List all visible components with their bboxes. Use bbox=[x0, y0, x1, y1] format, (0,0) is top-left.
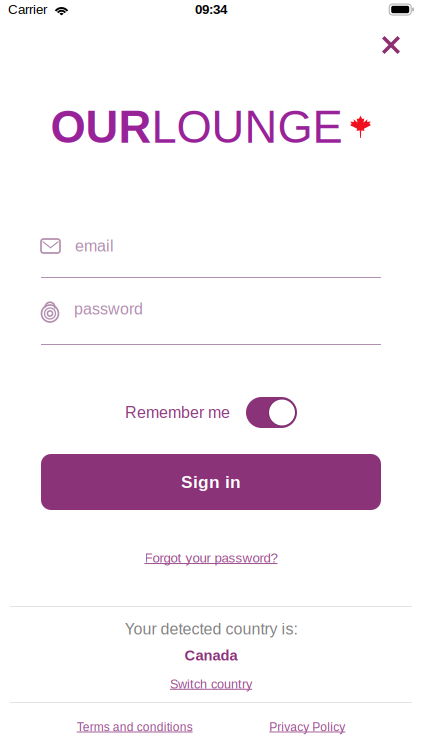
staticText: LOUNGE bbox=[151, 102, 342, 152]
staticText: 09:34 bbox=[195, 2, 227, 17]
button[interactable]: Forgot your password? bbox=[144, 551, 277, 565]
staticText: Your detected country is: bbox=[124, 620, 297, 638]
staticText: email bbox=[75, 237, 114, 255]
button[interactable]: Close bbox=[373, 27, 409, 63]
button[interactable]: Sign in bbox=[41, 454, 381, 510]
staticText: Terms and conditions bbox=[77, 720, 193, 734]
staticText: Privacy Policy bbox=[269, 720, 345, 734]
button[interactable]: Switch country bbox=[170, 675, 252, 693]
staticText: Carrier bbox=[8, 2, 47, 17]
staticText: Switch country bbox=[170, 677, 252, 691]
button[interactable]: Privacy Policy bbox=[269, 720, 345, 734]
staticText: Sign in bbox=[181, 472, 241, 492]
button[interactable]: Remember me bbox=[230, 397, 297, 428]
staticText: password bbox=[74, 300, 143, 318]
staticText: Forgot your password? bbox=[144, 551, 277, 565]
button[interactable]: Terms and conditions bbox=[77, 720, 193, 734]
staticText: OUR bbox=[50, 102, 151, 152]
staticText: Canada bbox=[184, 647, 237, 664]
staticText: Remember me bbox=[125, 404, 230, 421]
